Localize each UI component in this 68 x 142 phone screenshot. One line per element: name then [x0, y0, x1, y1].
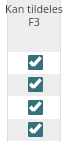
button[interactable]: Checked — [28, 77, 43, 92]
button[interactable]: Checked — [28, 55, 43, 70]
button[interactable]: Checked — [7, 119, 61, 141]
button[interactable]: Checked — [7, 52, 61, 74]
staticText: Kan tildeles — [0, 2, 68, 17]
button[interactable]: Checked — [28, 100, 43, 115]
button[interactable]: Checked — [7, 97, 61, 119]
button[interactable]: Checked — [28, 122, 43, 137]
staticText: F3 — [0, 15, 68, 30]
button[interactable]: Checked — [7, 74, 61, 96]
